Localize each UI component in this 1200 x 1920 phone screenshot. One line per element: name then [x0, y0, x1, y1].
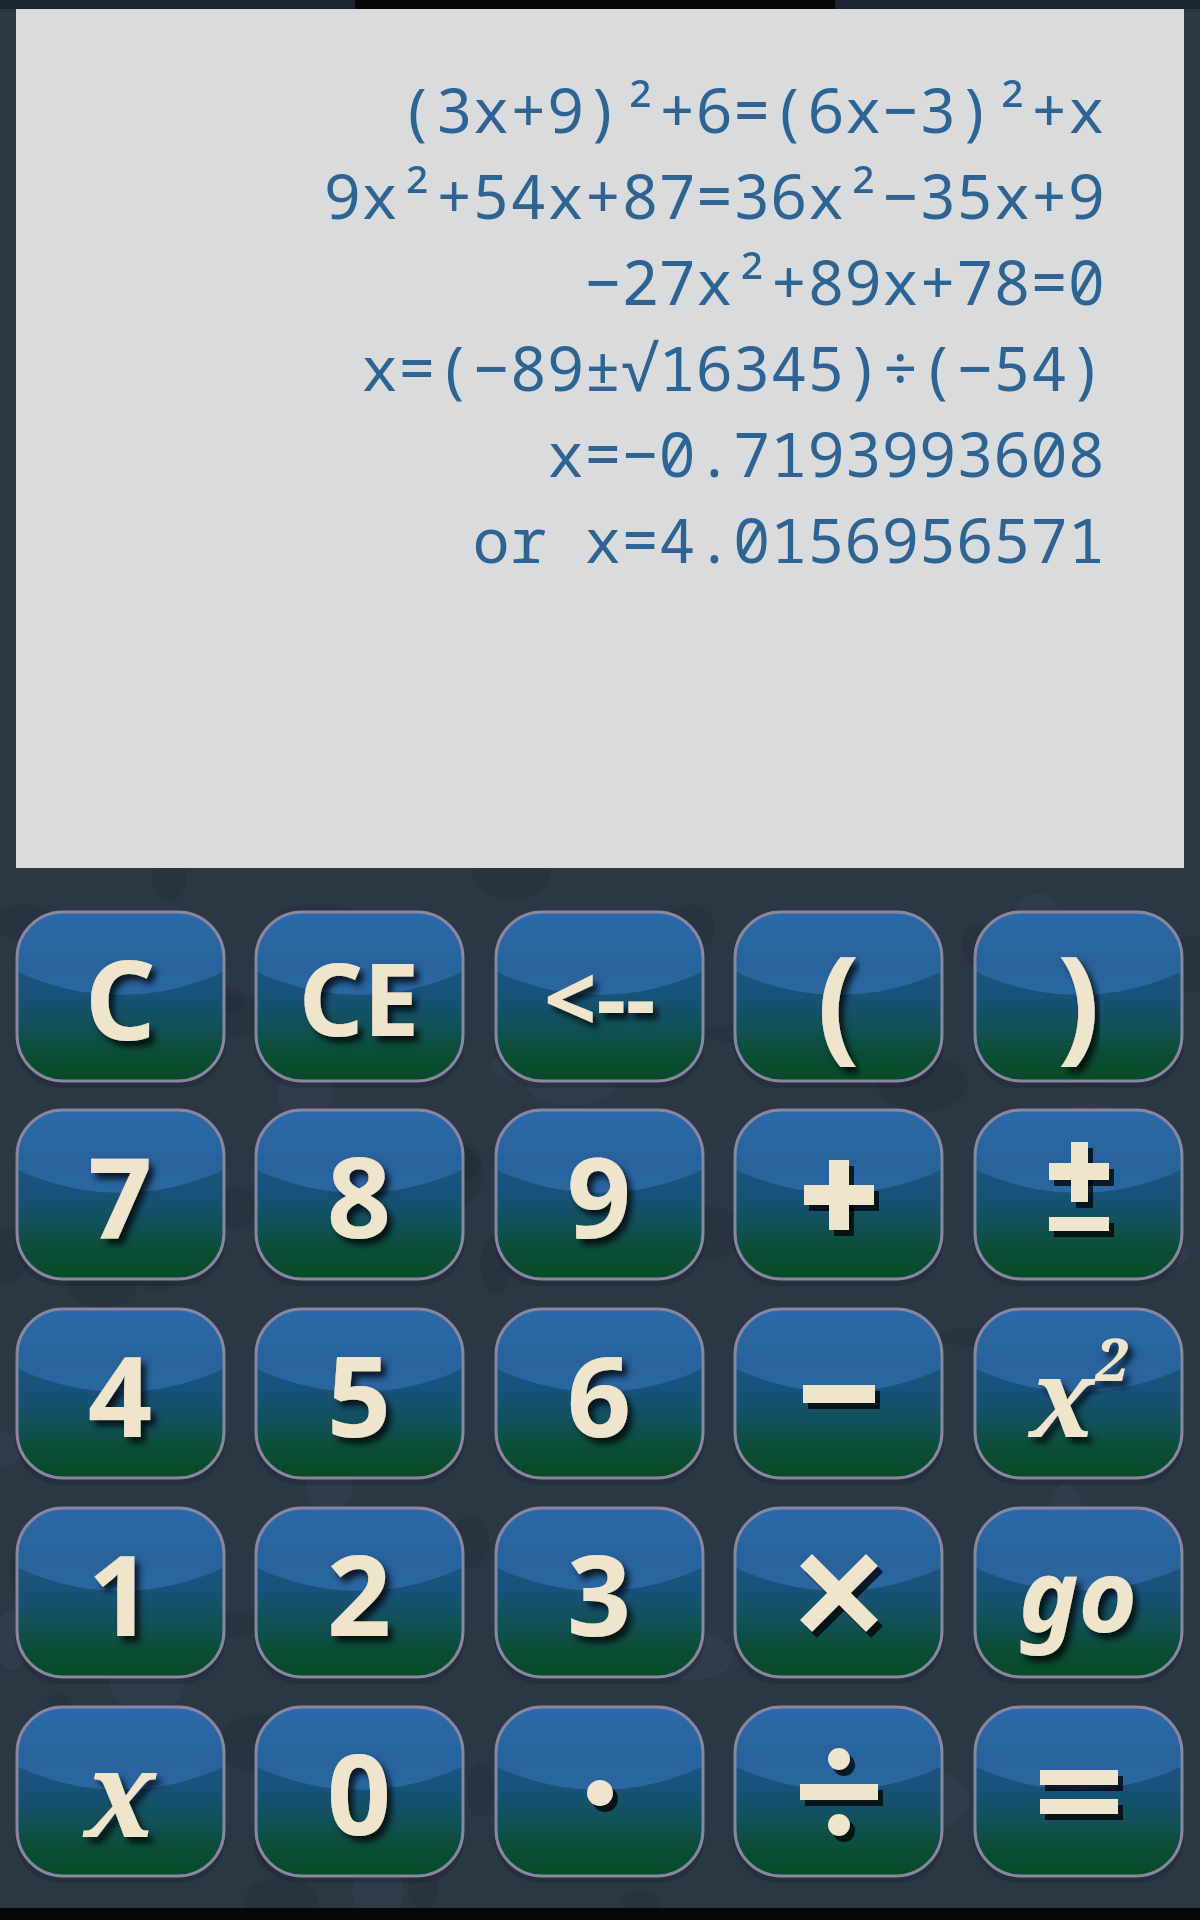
- staticText: 7: [88, 1118, 153, 1271]
- button[interactable]: 3: [496, 1508, 703, 1677]
- button[interactable]: CE: [256, 912, 463, 1081]
- button[interactable]: [975, 1707, 1182, 1876]
- button[interactable]: x: [17, 1707, 224, 1876]
- staticText: (: [817, 912, 860, 1081]
- button[interactable]: C: [17, 912, 224, 1081]
- staticText: ): [1057, 912, 1100, 1081]
- button[interactable]: (: [735, 912, 942, 1081]
- staticText: 4: [88, 1317, 153, 1470]
- button[interactable]: <--: [496, 912, 703, 1081]
- staticText: <--: [544, 934, 656, 1059]
- staticText: C: [85, 922, 156, 1072]
- staticText: CE: [299, 929, 420, 1065]
- staticText: x: [85, 1711, 157, 1872]
- staticText: 0: [327, 1715, 392, 1868]
- staticText: 3: [567, 1516, 632, 1669]
- button[interactable]: ): [975, 912, 1182, 1081]
- staticText: (3x+9)²+6=(6x−3)²+x 9x²+54x+87=36x²−35x+…: [16, 67, 1105, 582]
- staticText: x2: [1030, 1319, 1128, 1468]
- staticText: 9: [567, 1118, 632, 1271]
- button[interactable]: 6: [496, 1309, 703, 1478]
- staticText: 2: [327, 1516, 392, 1669]
- button[interactable]: 5: [256, 1309, 463, 1478]
- button[interactable]: [735, 1309, 942, 1478]
- button[interactable]: [735, 1508, 942, 1677]
- button[interactable]: 9: [496, 1110, 703, 1279]
- button[interactable]: 1: [17, 1508, 224, 1677]
- button[interactable]: [975, 1110, 1182, 1279]
- staticText: 5: [327, 1317, 392, 1470]
- button[interactable]: 8: [256, 1110, 463, 1279]
- staticText: 1: [88, 1516, 153, 1669]
- button[interactable]: x2: [975, 1309, 1182, 1478]
- staticText: go: [1019, 1525, 1138, 1661]
- button[interactable]: 2: [256, 1508, 463, 1677]
- staticText: 8: [327, 1118, 392, 1271]
- button[interactable]: 7: [17, 1110, 224, 1279]
- button[interactable]: go: [975, 1508, 1182, 1677]
- button[interactable]: [735, 1110, 942, 1279]
- button[interactable]: 4: [17, 1309, 224, 1478]
- button[interactable]: [735, 1707, 942, 1876]
- staticText: 6: [567, 1317, 632, 1470]
- button[interactable]: [496, 1707, 703, 1876]
- button[interactable]: 0: [256, 1707, 463, 1876]
